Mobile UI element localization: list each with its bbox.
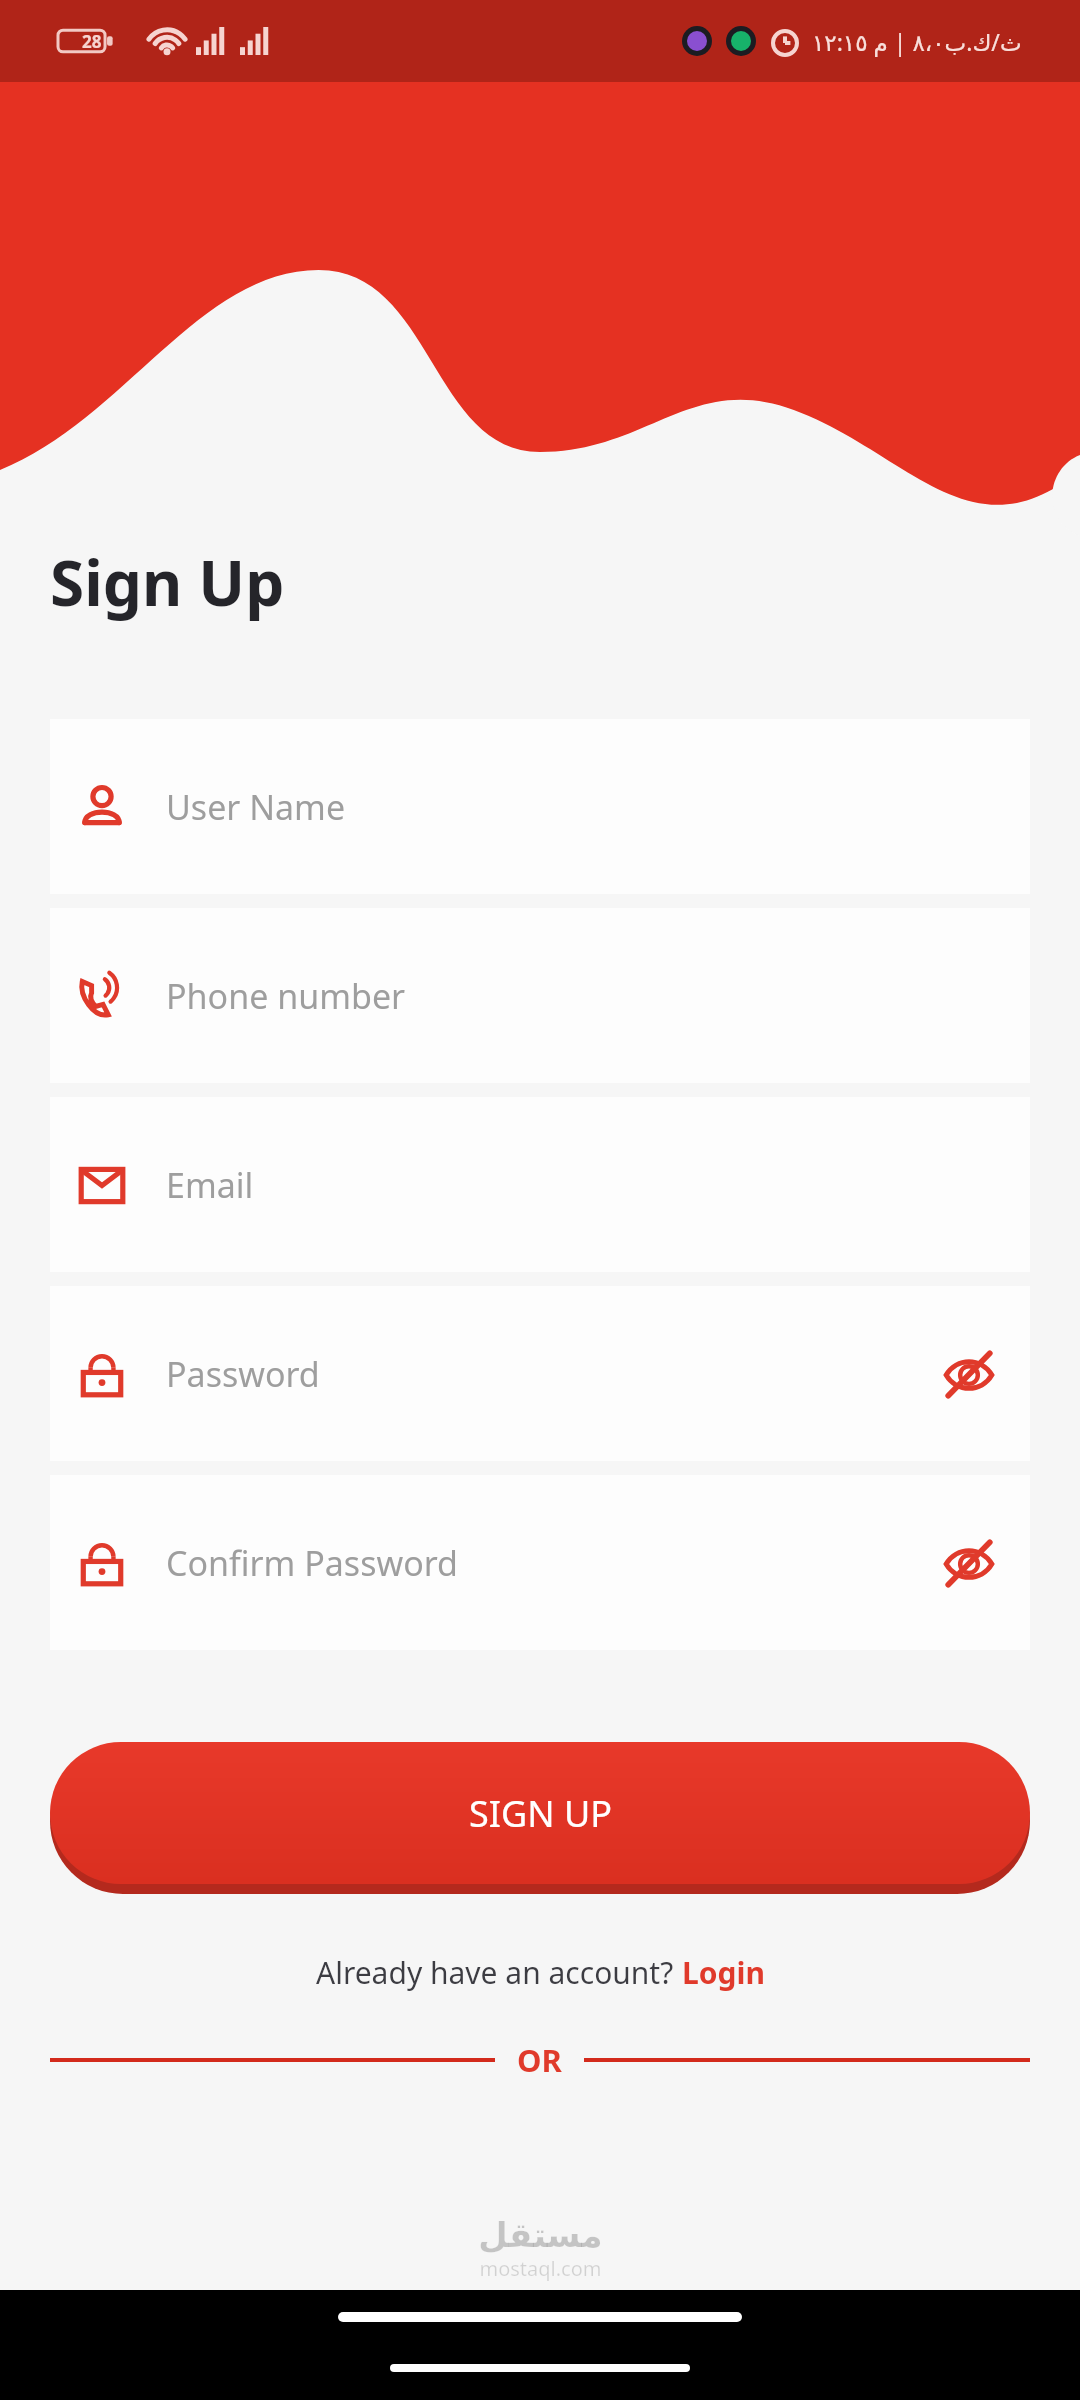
button[interactable]: Confirm Password	[50, 1475, 1030, 1650]
button[interactable]: Email	[50, 1097, 1030, 1272]
button[interactable]: Toggle password visibility	[934, 1528, 1004, 1598]
button[interactable]: Login	[682, 1952, 765, 1993]
staticText: Login	[682, 1952, 765, 1993]
staticText: User Name	[166, 784, 346, 830]
staticText: Password	[166, 1351, 320, 1397]
staticText: Email	[166, 1162, 254, 1208]
button[interactable]: Toggle password visibility	[934, 1339, 1004, 1409]
staticText: OR	[517, 2039, 562, 2081]
button[interactable]: Phone number	[50, 908, 1030, 1083]
staticText: Confirm Password	[166, 1540, 458, 1586]
staticText: ث/ك.ب٨،٠ | م ١٢:١٥	[812, 26, 1022, 57]
staticText: مستقل	[478, 2215, 603, 2255]
staticText: SIGN UP	[469, 1789, 612, 1838]
button[interactable]: SIGN UP	[50, 1742, 1030, 1884]
button[interactable]: Password	[50, 1286, 1030, 1461]
staticText: mostaql.com	[479, 2255, 602, 2282]
staticText: Phone number	[166, 973, 406, 1019]
button[interactable]: User Name	[50, 719, 1030, 894]
staticText: Sign Up	[50, 540, 285, 624]
staticText: 28	[82, 30, 102, 53]
staticText: Already have an account?	[316, 1952, 682, 1993]
